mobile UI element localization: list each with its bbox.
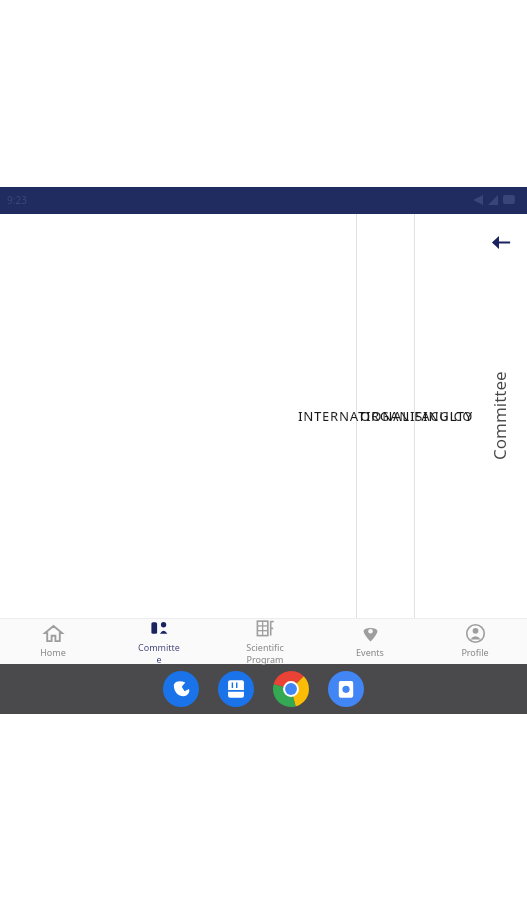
- button[interactable]: Phone: [162, 670, 200, 708]
- staticText: Scientific Program: [242, 640, 287, 664]
- staticText: Committee: [136, 640, 181, 664]
- staticText: ORGANISING COMMITEE: [360, 407, 527, 425]
- button[interactable]: Home: [0, 619, 106, 664]
- button[interactable]: Events: [317, 619, 422, 664]
- staticText: Profile: [461, 646, 489, 658]
- staticText: INTERNATIONAL FACULTY: [298, 407, 474, 425]
- button[interactable]: Camera: [327, 670, 365, 708]
- button[interactable]: INTERNATIONAL FACULTY: [357, 214, 414, 618]
- staticText: Home: [40, 646, 66, 658]
- button[interactable]: Committee: [106, 619, 212, 664]
- button[interactable]: Profile: [422, 619, 527, 664]
- staticText: Committee: [488, 371, 511, 460]
- staticText: Events: [356, 646, 384, 658]
- button[interactable]: Chrome: [272, 670, 310, 708]
- button[interactable]: Back: [477, 220, 523, 266]
- button[interactable]: Docs: [217, 670, 255, 708]
- staticText: 9:23: [7, 193, 27, 207]
- button[interactable]: ORGANISING COMMITEE: [415, 214, 472, 618]
- button[interactable]: Scientific Program: [212, 619, 317, 664]
